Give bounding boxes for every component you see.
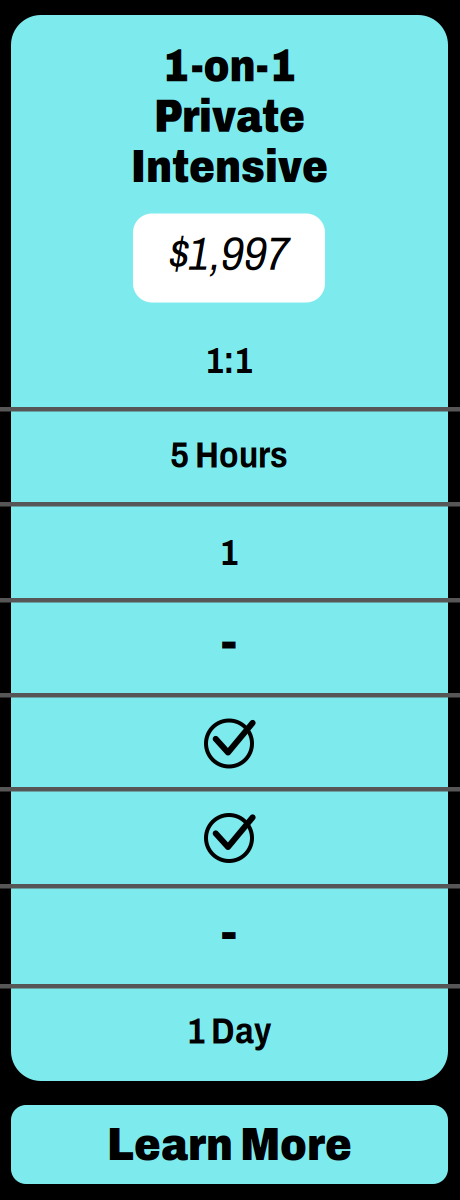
staticText: Private <box>154 92 305 141</box>
staticText: 1:1 <box>205 341 252 381</box>
staticText: 5 Hours <box>170 436 288 475</box>
staticText: Intensive <box>131 142 328 191</box>
staticText: $1,997 <box>169 230 289 279</box>
staticText: 1-on-1 <box>163 41 295 91</box>
staticText: - <box>220 901 238 964</box>
staticText: Learn More <box>107 1119 352 1170</box>
staticText: - <box>220 610 238 674</box>
staticText: 1 <box>220 533 238 573</box>
button[interactable]: Learn More <box>11 1105 448 1184</box>
staticText: 1 Day <box>187 1012 271 1051</box>
